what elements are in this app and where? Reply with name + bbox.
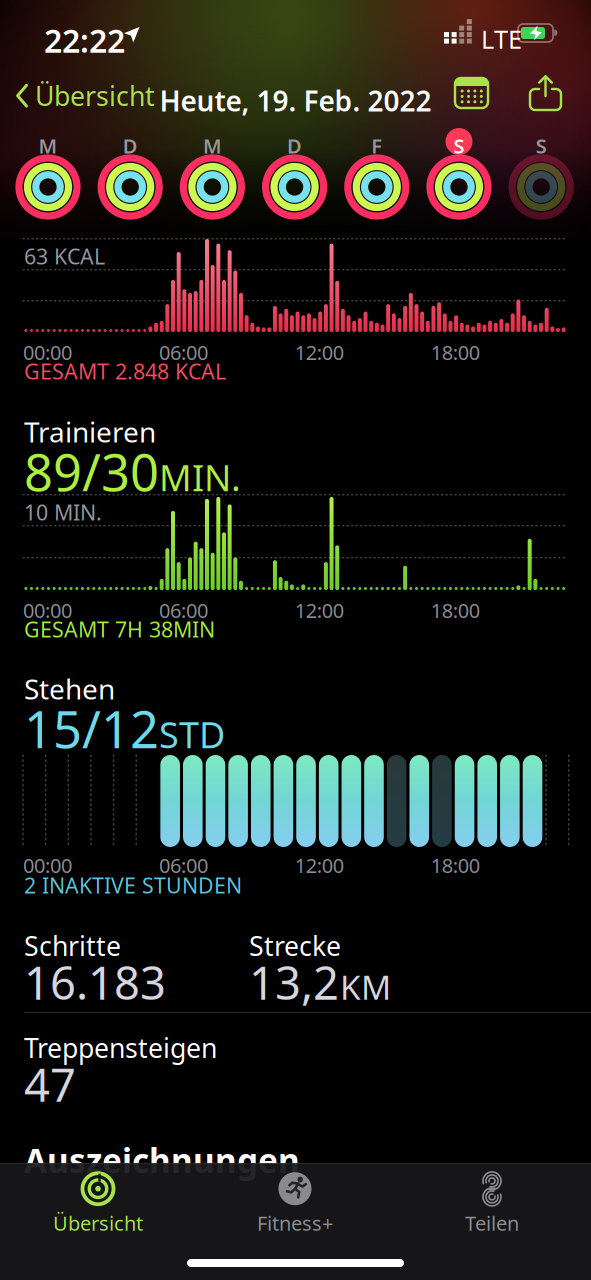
staticText: 12:00: [295, 339, 344, 366]
staticText: STD: [159, 710, 225, 758]
button[interactable]: Tag M: [14, 128, 81, 220]
staticText: GESAMT 2.848 KCAL: [24, 357, 226, 385]
staticText: Treppensteigen: [24, 1030, 217, 1065]
button[interactable]: Kalender: [455, 78, 488, 108]
staticText: 00:00: [23, 339, 72, 366]
staticText: 12:00: [295, 597, 344, 624]
staticText: 00:00: [23, 597, 72, 624]
button[interactable]: Übersicht: [16, 78, 155, 113]
staticText: Strecke: [249, 928, 341, 963]
staticText: Übersicht: [53, 1210, 143, 1236]
staticText: 18:00: [431, 339, 480, 366]
staticText: F: [371, 132, 382, 159]
staticText: 16.183: [24, 952, 166, 1012]
staticText: 89/30: [24, 438, 159, 505]
staticText: 13,2: [249, 952, 339, 1012]
staticText: 00:00: [23, 852, 72, 879]
staticText: Heute, 19. Feb. 2022: [159, 82, 431, 119]
button[interactable]: Teilen: [397, 1171, 587, 1237]
staticText: Übersicht: [35, 78, 155, 113]
staticText: M: [203, 132, 222, 159]
staticText: LTE: [481, 22, 522, 56]
staticText: S: [453, 132, 464, 159]
staticText: 06:00: [159, 339, 208, 366]
staticText: MIN.: [159, 453, 241, 501]
staticText: 63 KCAL: [24, 242, 105, 270]
staticText: 2 INAKTIVE STUNDEN: [24, 871, 242, 899]
staticText: Schritte: [24, 928, 121, 963]
staticText: Auszeichnungen: [24, 1138, 300, 1182]
staticText: KM: [340, 965, 391, 1009]
staticText: Teilen: [465, 1210, 519, 1236]
button[interactable]: Tag D: [97, 128, 164, 220]
staticText: 15/12: [24, 695, 159, 762]
staticText: 06:00: [159, 852, 208, 879]
button[interactable]: Teilen: [530, 75, 561, 110]
staticText: 10 MIN.: [24, 498, 102, 526]
button[interactable]: Tag M: [179, 128, 246, 220]
staticText: Stehen: [24, 670, 115, 707]
staticText: Trainieren: [24, 413, 156, 450]
button[interactable]: Fitness+: [200, 1171, 390, 1237]
staticText: 22:22: [44, 19, 125, 61]
staticText: Fitness+: [257, 1210, 333, 1236]
button[interactable]: Übersicht: [3, 1171, 193, 1237]
button[interactable]: Tag S: [425, 128, 492, 220]
button[interactable]: Tag S: [508, 128, 575, 220]
staticText: D: [287, 132, 302, 159]
button[interactable]: Tag F: [343, 128, 410, 220]
staticText: D: [123, 132, 138, 159]
staticText: 47: [24, 1054, 76, 1114]
staticText: 12:00: [295, 852, 344, 879]
staticText: S: [536, 132, 547, 159]
staticText: 06:00: [159, 597, 208, 624]
button[interactable]: Tag D: [261, 128, 328, 220]
staticText: M: [38, 132, 57, 159]
staticText: 18:00: [431, 852, 480, 879]
staticText: GESAMT 7H 38MIN: [24, 615, 215, 643]
staticText: 18:00: [431, 597, 480, 624]
